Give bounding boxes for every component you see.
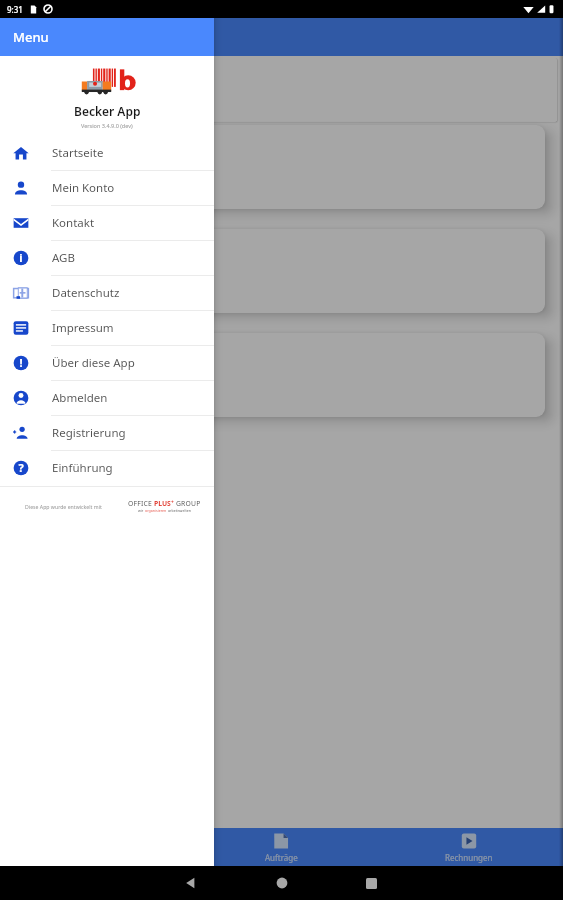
staticText: Startseite: [52, 145, 104, 161]
staticText: Kontakt: [52, 215, 95, 231]
staticText: i: [19, 250, 23, 265]
button[interactable]: Impressum: [0, 311, 214, 346]
button[interactable]: ?: [0, 451, 214, 486]
staticText: organisieren: [145, 508, 167, 513]
staticText: Über diese App: [52, 355, 135, 371]
staticText: Version 3.4.9.0 (dev): [81, 122, 133, 129]
staticText: Becker App: [74, 103, 141, 119]
staticText: arbeitswelten: [167, 508, 191, 513]
staticText: ?: [18, 460, 24, 475]
button[interactable]: i: [0, 241, 214, 276]
staticText: AGB: [52, 250, 75, 266]
staticText: GROUP: [174, 499, 201, 508]
staticText: PLUS: [154, 499, 171, 508]
button[interactable]: Datenschutz: [0, 276, 214, 311]
other: Home: [276, 877, 288, 889]
staticText: Abmelden: [52, 390, 108, 406]
staticText: Diese App wurde entwickelt mit: [25, 503, 102, 510]
staticText: Datenschutz: [52, 285, 120, 301]
button[interactable]: Registrierung: [0, 416, 214, 451]
button[interactable]: [18, 333, 545, 417]
staticText: Aufträge: [265, 852, 298, 863]
staticText: OFFICE: [128, 499, 154, 508]
button[interactable]: [18, 229, 545, 313]
staticText: wir: [138, 508, 145, 513]
staticText: Registrierung: [52, 425, 126, 441]
other: Recents: [366, 878, 377, 889]
other: Back: [185, 877, 197, 889]
staticText: Rechnungen: [445, 852, 493, 863]
button[interactable]: Aufträge: [187, 828, 375, 866]
staticText: !: [19, 355, 23, 370]
button[interactable]: !: [0, 346, 214, 381]
staticText: +: [171, 499, 174, 506]
staticText: Impressum: [52, 320, 114, 336]
staticText: 9:31: [7, 4, 23, 15]
button[interactable]: Abmelden: [0, 381, 214, 416]
button[interactable]: [18, 125, 545, 209]
button[interactable]: Mein Konto: [0, 171, 214, 206]
button[interactable]: Rechnungen: [375, 828, 563, 866]
button[interactable]: Kontakt: [0, 206, 214, 241]
button[interactable]: Startseite: [0, 136, 214, 171]
staticText: Einführung: [52, 460, 113, 476]
staticText: Mein Konto: [52, 180, 115, 196]
staticText: Menu: [13, 28, 49, 46]
